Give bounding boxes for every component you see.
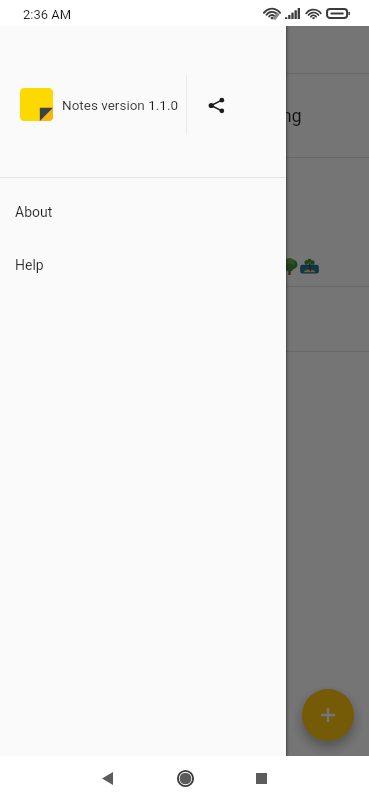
button[interactable]: Recents xyxy=(239,756,283,800)
button[interactable]: Help xyxy=(0,238,286,291)
staticText: Tomorrow: groceries and cleaning xyxy=(30,105,302,126)
button[interactable]: Add note xyxy=(302,689,354,741)
staticText: 2:36 AM xyxy=(23,7,72,22)
button[interactable]: About xyxy=(0,185,286,238)
button[interactable]: Share xyxy=(197,86,235,124)
staticText: About xyxy=(15,204,53,220)
button[interactable]: Home xyxy=(163,756,207,800)
staticText: Help xyxy=(15,257,44,273)
button[interactable]: Back xyxy=(85,756,129,800)
staticText: Notes version 1.1.0 xyxy=(62,97,179,113)
